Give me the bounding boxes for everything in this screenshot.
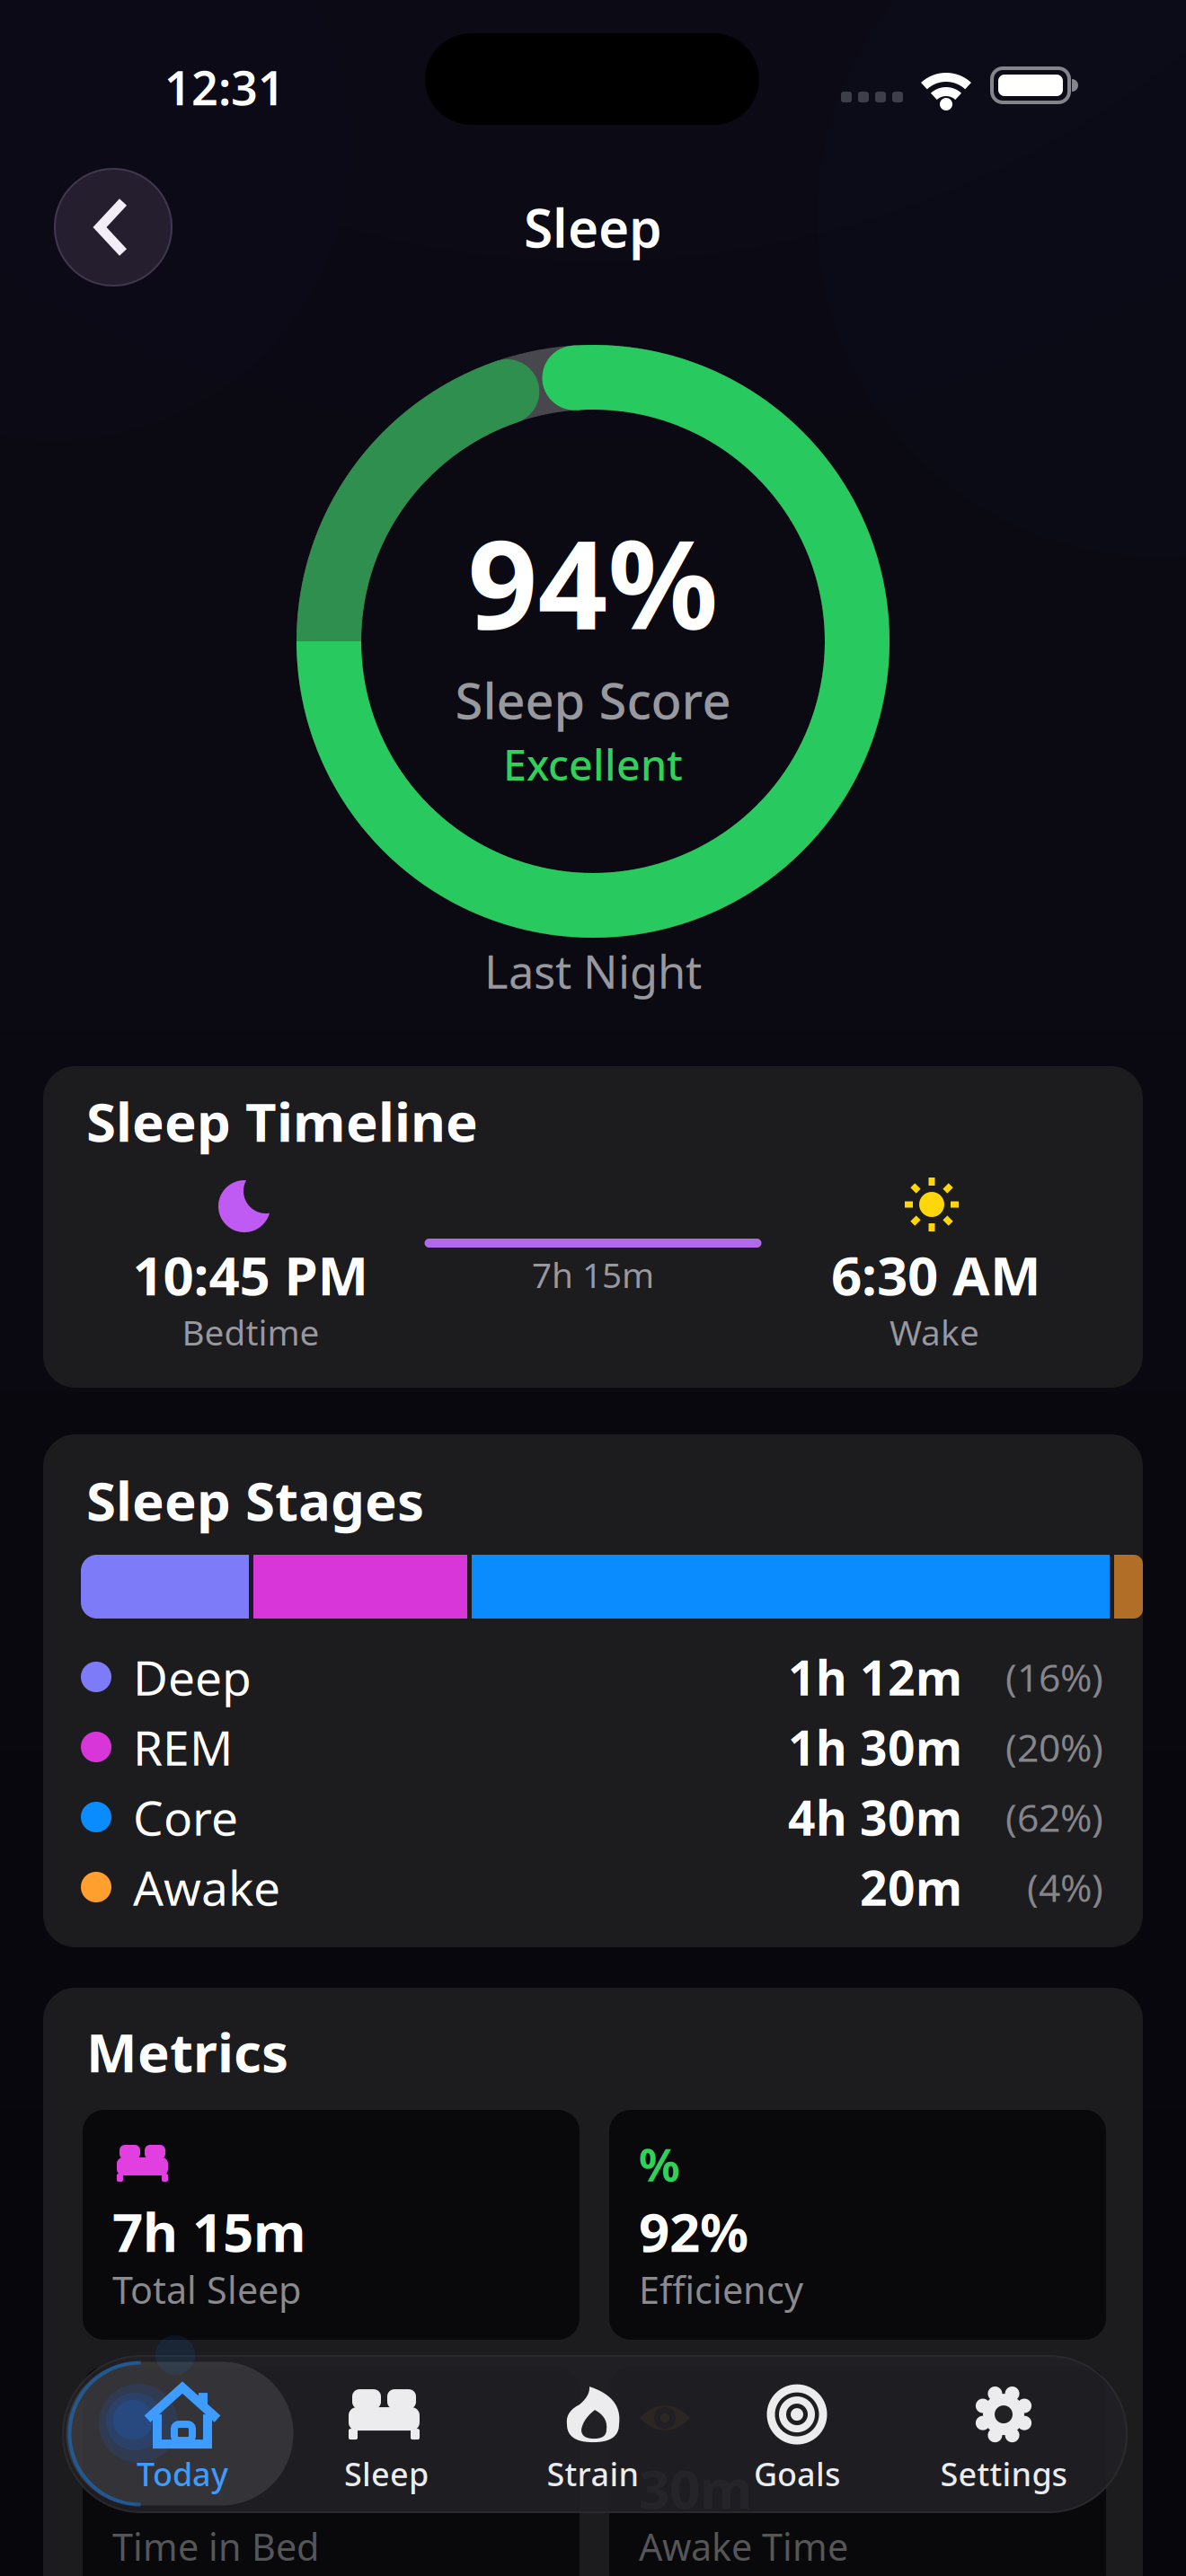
button[interactable]: Strain: [499, 2369, 687, 2504]
staticText: 1h 12m: [788, 1645, 962, 1709]
staticText: Core: [133, 1785, 238, 1849]
staticText: Settings: [940, 2452, 1067, 2495]
staticText: 7h 15m: [532, 1251, 654, 1298]
staticText: 4h 30m: [788, 1785, 962, 1849]
staticText: 30m: [639, 2452, 753, 2524]
button[interactable]: Goals: [703, 2369, 891, 2504]
staticText: Today: [137, 2452, 228, 2495]
staticText: Awake: [133, 1855, 280, 1919]
staticText: 1h 30m: [788, 1715, 962, 1779]
staticText: Sleep Stages: [86, 1464, 424, 1536]
staticText: Strain: [547, 2452, 639, 2495]
staticText: REM: [133, 1715, 233, 1779]
staticText: Time in Bed: [112, 2522, 319, 2571]
staticText: 12:31: [164, 56, 285, 118]
staticText: Metrics: [86, 2016, 288, 2087]
staticText: Deep: [133, 1645, 252, 1709]
staticText: Bedtime: [182, 1309, 319, 1355]
staticText: 6:30 AM: [831, 1239, 1041, 1310]
staticText: 7h 15m: [112, 2195, 306, 2267]
button[interactable]: Sleep: [292, 2369, 481, 2504]
staticText: Sleep Timeline: [86, 1085, 478, 1157]
staticText: Awake Time: [639, 2522, 848, 2571]
staticText: Total Sleep: [112, 2265, 301, 2314]
staticText: (16%): [1005, 1651, 1103, 1702]
staticText: Goals: [754, 2452, 840, 2495]
staticText: 94%: [468, 501, 718, 663]
staticText: Sleep: [524, 192, 662, 262]
staticText: (20%): [1005, 1722, 1103, 1772]
staticText: 20m: [860, 1855, 962, 1919]
staticText: (4%): [1027, 1862, 1103, 1913]
staticText: (62%): [1005, 1792, 1103, 1843]
staticText: Wake: [889, 1309, 979, 1355]
button[interactable]: [54, 168, 173, 287]
staticText: Efficiency: [639, 2265, 803, 2314]
button[interactable]: Today: [88, 2369, 277, 2504]
staticText: %: [639, 2134, 680, 2194]
staticText: Excellent: [503, 737, 683, 792]
staticText: Last Night: [484, 941, 702, 1001]
button[interactable]: Settings: [909, 2369, 1098, 2504]
staticText: 10:45 PM: [133, 1239, 369, 1310]
staticText: Sleep Score: [455, 666, 731, 733]
staticText: 92%: [639, 2195, 748, 2267]
staticText: Sleep: [344, 2452, 429, 2495]
